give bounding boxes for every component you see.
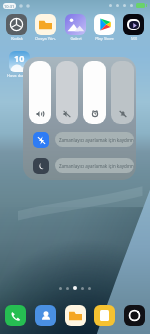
button[interactable] [83,61,106,124]
staticText: Zamanlayıcı ayarlamak için kaydırın [59,163,134,169]
button[interactable]: 10 [6,51,33,78]
button[interactable]: Zamanlayıcı ayarlamak için kaydırın [33,157,134,174]
button[interactable]: Camera [124,305,145,326]
button[interactable] [56,61,78,124]
button[interactable]: Galeri [62,14,89,41]
button[interactable]: Kodak [3,14,30,41]
button[interactable]: Files [65,305,86,326]
button[interactable]: MX [120,14,147,41]
staticText: Kodak [11,36,23,41]
button[interactable]: Phone [5,305,26,326]
button[interactable]: Contacts [35,305,56,326]
staticText: Play Store [95,36,114,41]
staticText: MX [131,36,137,41]
button[interactable]: Zamanlayıcı ayarlamak için kaydırın [33,131,134,148]
staticText: Galeri [70,36,82,41]
staticText: Dosya Yön. [35,36,56,41]
staticText: 10 [14,52,25,64]
button[interactable] [111,61,134,124]
button[interactable]: Notes [94,305,115,326]
button[interactable]: Dosya Yön. [32,14,59,41]
staticText: 10:31 [4,4,15,9]
staticText: Zamanlayıcı ayarlamak için kaydırın [59,137,134,143]
button[interactable] [29,61,51,124]
staticText: Hava durumu [7,73,33,78]
button[interactable]: Play Store [91,14,118,41]
